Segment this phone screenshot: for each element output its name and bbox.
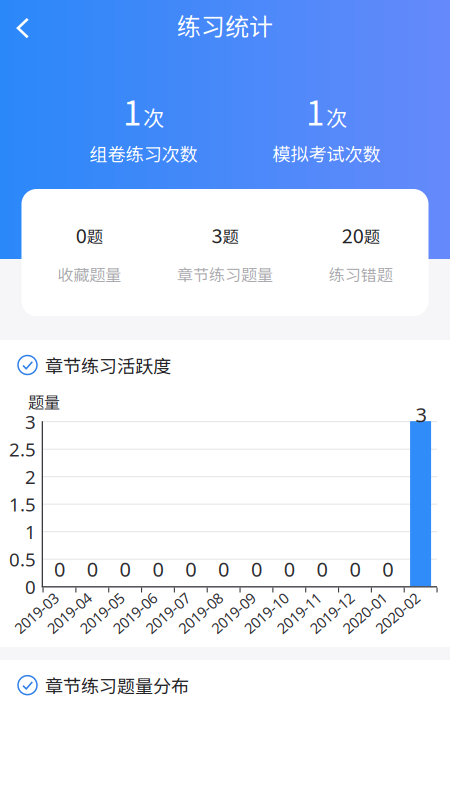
staticText: 2020-02 [371,603,424,623]
staticText: 题 [364,224,380,247]
button[interactable]: 章节练习题量分布 [0,674,450,696]
staticText: 2019-05 [76,603,129,623]
button[interactable]: Back [0,5,46,51]
staticText: 0 [317,556,328,582]
staticText: 0 [87,556,98,582]
staticText: 章节练习题量 [177,262,273,286]
staticText: 题量 [28,390,60,413]
staticText: 2019-08 [174,603,227,623]
staticText: 题 [222,224,238,247]
staticText: 2019-07 [141,603,194,623]
staticText: 20 [342,220,364,249]
staticText: 2019-11 [273,603,326,623]
staticText: 章节练习活跃度 [45,352,171,378]
staticText: 次 [326,102,347,133]
staticText: 练习统计 [177,8,273,42]
staticText: 1 [306,87,325,135]
staticText: 0.5 [9,547,36,572]
staticText: 0 [54,556,65,582]
staticText: 2019-10 [240,603,293,623]
staticText: 0 [218,556,229,582]
button[interactable]: 章节练习活跃度 [0,354,450,376]
staticText: 收藏题量 [57,262,121,286]
staticText: 0 [284,556,295,582]
staticText: 2020-01 [338,603,391,623]
staticText: 0 [120,556,131,582]
staticText: 组卷练习次数 [89,140,197,166]
staticText: 0 [25,574,36,599]
staticText: 2019-04 [43,603,96,623]
staticText: 0 [185,556,196,582]
staticText: 2 [25,464,36,489]
staticText: 3 [211,220,222,249]
staticText: 次 [143,102,164,133]
staticText: 章节练习题量分布 [45,672,189,698]
staticText: 0 [76,220,87,249]
staticText: 3 [416,401,427,428]
staticText: 2019-12 [305,603,358,623]
staticText: 3 [25,409,36,434]
staticText: 2019-03 [10,603,63,623]
staticText: 1 [25,519,36,544]
staticText: 0 [349,556,360,582]
staticText: 题 [87,224,103,247]
staticText: 2.5 [9,437,36,462]
staticText: 模拟考试次数 [272,140,380,166]
staticText: 0 [152,556,163,582]
staticText: 2019-06 [108,603,161,623]
staticText: 练习错题 [329,262,393,286]
staticText: 1 [123,87,142,135]
staticText: 2019-09 [207,603,260,623]
staticText: 0 [382,556,393,582]
staticText: 0 [251,556,262,582]
staticText: 1.5 [9,492,36,517]
